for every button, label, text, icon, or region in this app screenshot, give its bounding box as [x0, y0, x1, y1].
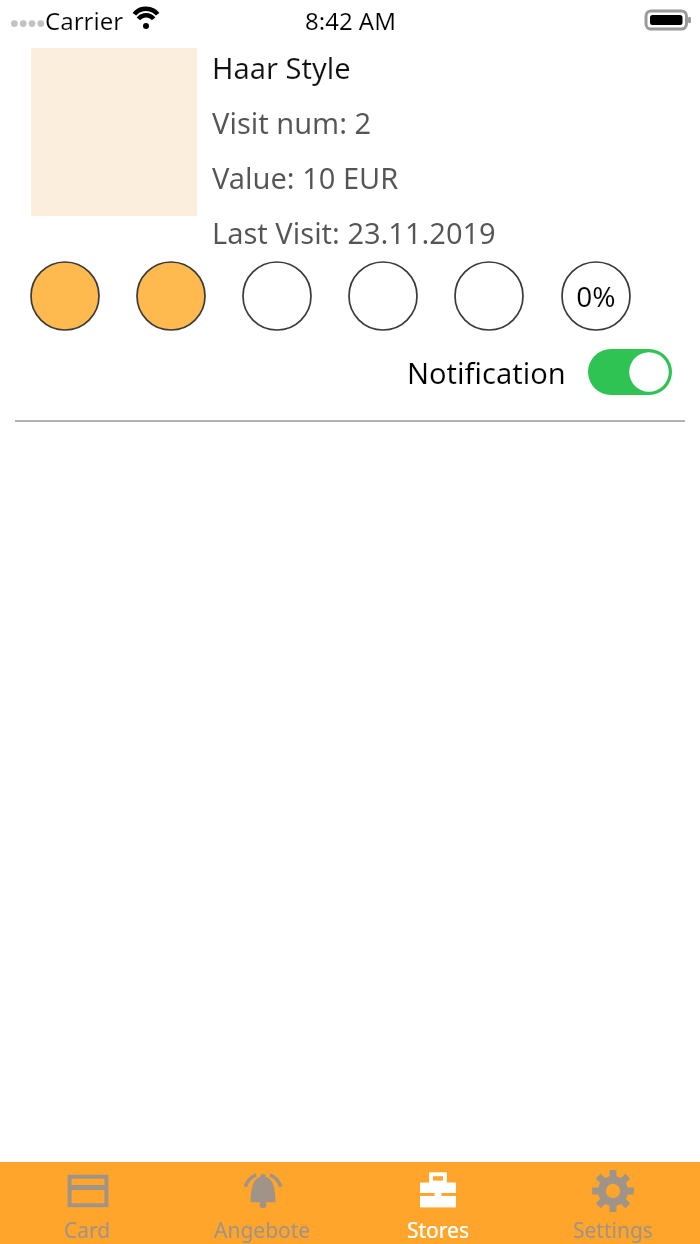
button[interactable]: Angebote [175, 1162, 350, 1244]
button[interactable]: Notification toggle, on [588, 349, 672, 395]
staticText: Haar Style [212, 48, 351, 87]
staticText: Angebote [214, 1216, 311, 1244]
staticText: Value: 10 EUR [212, 158, 399, 197]
staticText: 8:42 AM [305, 4, 396, 37]
button[interactable]: Settings [525, 1162, 700, 1244]
staticText: Notification [407, 353, 566, 392]
button[interactable]: Stores [350, 1162, 525, 1244]
staticText: Visit num: 2 [212, 103, 372, 142]
button[interactable]: Card [0, 1162, 175, 1244]
staticText: Last Visit: 23.11.2019 [212, 213, 496, 252]
staticText: Stores [407, 1216, 469, 1244]
staticText: Carrier [45, 4, 124, 37]
staticText: Settings [573, 1216, 653, 1244]
button[interactable]: Haar Style [31, 48, 700, 252]
staticText: 0% [576, 277, 616, 315]
staticText: Card [64, 1216, 111, 1244]
button[interactable]: 0% [562, 262, 630, 330]
